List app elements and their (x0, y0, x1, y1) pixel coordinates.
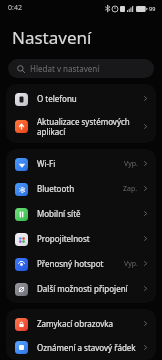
button[interactable]: O telefonu (6, 86, 156, 111)
staticText: Propojitelnost (37, 233, 142, 244)
staticText: Přenosný hotspot (37, 258, 124, 269)
button[interactable]: Oznámení a stavový řádek (6, 336, 156, 358)
staticText: Mobilní sítě (37, 208, 142, 219)
button[interactable]: Přenosný hotspot (6, 251, 156, 276)
staticText: 99 (149, 5, 156, 12)
staticText: Vyp. (124, 159, 138, 169)
staticText: O telefonu (37, 93, 142, 104)
staticText: Wi-Fi (37, 158, 124, 169)
button[interactable]: Aktualizace systémových aplikací (6, 111, 156, 141)
staticText: Zap. (123, 184, 138, 194)
staticText: Aktualizace systémových aplikací (37, 116, 142, 137)
staticText: Vyp. (124, 259, 138, 269)
staticText: Oznámení a stavový řádek (37, 342, 142, 353)
button[interactable]: Další možnosti připojení (6, 276, 156, 301)
button[interactable]: Zamykací obrazovka (6, 311, 156, 336)
staticText: 0:42 (8, 3, 22, 13)
staticText: Nastavení (12, 26, 92, 49)
staticText: Bluetooth (37, 183, 123, 194)
staticText: Další možnosti připojení (37, 283, 142, 294)
button[interactable]: Hledat v nastavení (8, 59, 154, 78)
staticText: Zamykací obrazovka (37, 318, 142, 329)
button[interactable]: Propojitelnost (6, 226, 156, 251)
button[interactable]: Wi-Fi (6, 151, 156, 176)
button[interactable]: Mobilní sítě (6, 201, 156, 226)
staticText: Hledat v nastavení (30, 63, 100, 74)
button[interactable]: Bluetooth (6, 176, 156, 201)
